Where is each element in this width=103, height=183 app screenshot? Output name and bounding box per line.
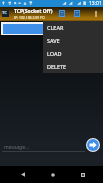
button[interactable]: Recents (74, 166, 91, 183)
staticText: LOAD (47, 50, 62, 57)
button[interactable]: More options (92, 10, 100, 18)
button[interactable]: CLEAR (43, 21, 103, 34)
staticText: CLEAR (47, 24, 64, 31)
staticText: TCP (2, 10, 9, 17)
staticText: DELETE (47, 63, 67, 70)
staticText: IP: 192.168.3.99 PO (14, 15, 45, 20)
button[interactable]: SAVE (43, 34, 103, 47)
button[interactable]: Send (86, 138, 100, 152)
button[interactable]: Back (14, 166, 31, 183)
staticText: message... (4, 144, 30, 151)
button[interactable]: DELETE (43, 60, 103, 73)
button[interactable]: Connect (59, 10, 65, 17)
staticText: SAVE (47, 37, 60, 44)
button[interactable]: Home (44, 166, 61, 183)
button[interactable]: Settings (74, 10, 80, 17)
staticText: 13:01 (89, 0, 102, 7)
staticText: TCP(Socket Off) (14, 8, 53, 15)
button[interactable]: LOAD (43, 47, 103, 60)
